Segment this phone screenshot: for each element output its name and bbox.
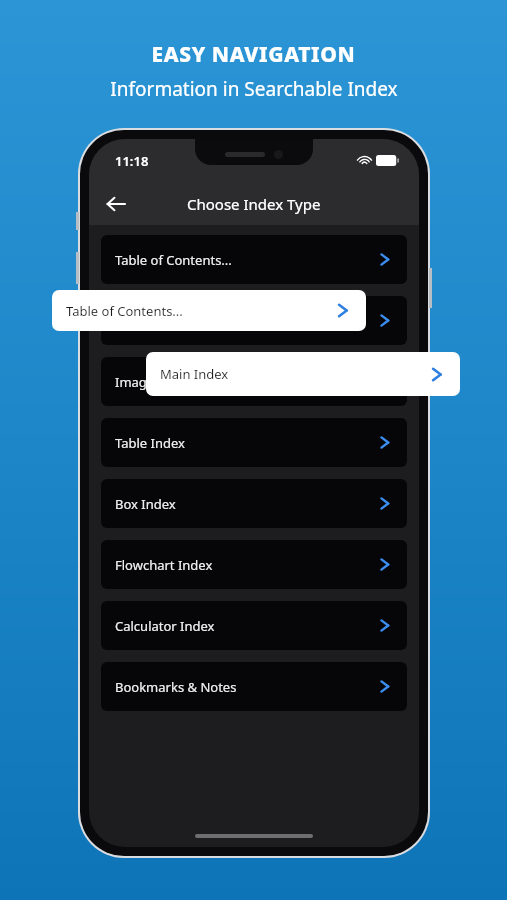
staticText: Table of Contents... <box>66 302 333 320</box>
button[interactable]: Bookmarks & Notes <box>101 662 407 711</box>
staticText: Information in Searchable Index <box>110 76 398 102</box>
staticText: Table Index <box>115 434 376 452</box>
staticText: EASY NAVIGATION <box>151 40 356 69</box>
button[interactable]: Main Index <box>146 352 460 396</box>
staticText: 11:18 <box>115 152 149 170</box>
button[interactable]: Calculator Index <box>101 601 407 650</box>
staticText: Main Index <box>115 312 376 330</box>
staticText: Calculator Index <box>115 617 376 635</box>
staticText: Box Index <box>115 495 376 513</box>
button[interactable]: Main Index <box>101 296 407 345</box>
staticText: Main Index <box>160 365 427 383</box>
button[interactable]: Flowchart Index <box>101 540 407 589</box>
staticText: Bookmarks & Notes <box>115 678 376 696</box>
staticText: Choose Index Type <box>187 194 321 214</box>
button[interactable]: Image Index <box>101 357 407 406</box>
staticText: Table of Contents... <box>115 251 376 269</box>
button[interactable]: Back <box>97 185 135 223</box>
button[interactable]: Table Index <box>101 418 407 467</box>
staticText: Flowchart Index <box>115 556 376 574</box>
button[interactable]: Box Index <box>101 479 407 528</box>
button[interactable]: Table of Contents... <box>52 290 366 331</box>
staticText: Image Index <box>115 373 376 391</box>
button[interactable]: Table of Contents... <box>101 235 407 284</box>
